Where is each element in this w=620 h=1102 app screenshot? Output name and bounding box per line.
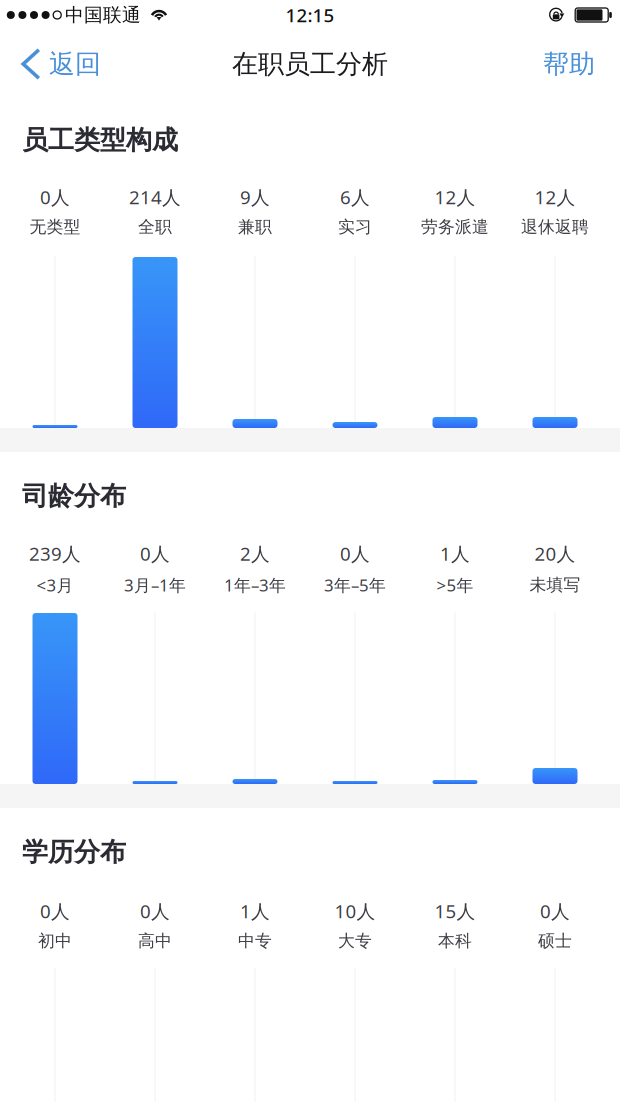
staticText: 214人 [129,184,181,210]
staticText: 12人 [534,184,575,210]
staticText: 大专 [338,930,372,952]
button[interactable]: 帮助 [523,32,620,96]
staticText: 10人 [334,898,375,924]
staticText: 初中 [38,930,72,952]
staticText: 0人 [340,541,370,566]
staticText: 未填写 [529,574,580,596]
staticText: 劳务派遣 [421,216,489,238]
staticText: 中国联通 [65,3,141,27]
staticText: 12人 [434,184,475,210]
staticText: 本科 [438,930,472,952]
staticText: 3月–1年 [124,574,186,596]
staticText: 返回 [49,48,101,80]
staticText: 0人 [140,541,170,566]
staticText: 退休返聘 [521,216,589,238]
staticText: <3月 [36,574,73,596]
staticText: 12:15 [285,2,334,28]
staticText: 0人 [40,898,70,924]
staticText: 帮助 [543,48,595,80]
staticText: 1人 [440,541,470,566]
staticText: 6人 [340,184,370,210]
staticText: 1年–3年 [224,574,286,596]
staticText: 0人 [540,898,570,924]
staticText: 员工类型构成 [22,124,178,156]
staticText: 全职 [138,216,172,238]
staticText: 0人 [40,184,70,210]
button[interactable]: 返回 [0,32,117,96]
staticText: 20人 [534,541,575,566]
staticText: 0人 [140,898,170,924]
staticText: 1人 [240,898,270,924]
staticText: >5年 [436,574,473,596]
staticText: 在职员工分析 [232,48,388,80]
staticText: 无类型 [29,216,80,238]
staticText: 2人 [240,541,270,566]
staticText: 实习 [338,216,372,238]
staticText: 9人 [240,184,270,210]
staticText: 3年–5年 [324,574,386,596]
staticText: 中专 [238,930,272,952]
staticText: 高中 [138,930,172,952]
staticText: 硕士 [538,930,572,952]
staticText: 司龄分布 [22,480,126,512]
staticText: 15人 [434,898,475,924]
staticText: 学历分布 [22,836,126,868]
staticText: 239人 [29,541,81,566]
staticText: 兼职 [238,216,272,238]
